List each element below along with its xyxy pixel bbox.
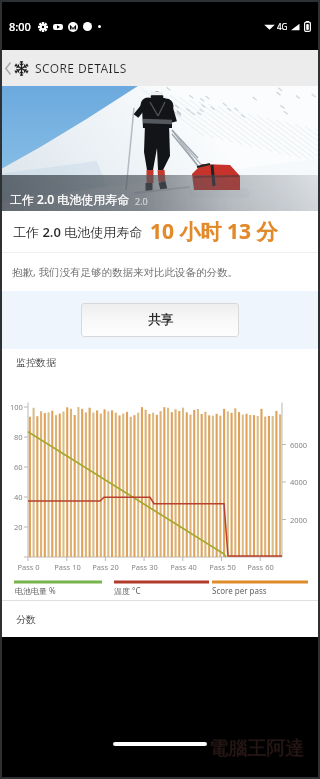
staticText: Pass 40 bbox=[170, 562, 197, 572]
staticText: 工作 2.0 电池使用寿命 bbox=[13, 223, 143, 241]
staticText: 工作 2.0 电池使用寿命 bbox=[10, 191, 130, 207]
staticText: 40 bbox=[14, 492, 23, 502]
staticText: 4G bbox=[277, 21, 288, 32]
staticText: Pass 10 bbox=[54, 562, 81, 572]
staticText: Pass 50 bbox=[209, 562, 236, 572]
staticText: 抱歉, 我们没有足够的数据来对比此设备的分数。 bbox=[12, 265, 239, 279]
staticText: 20 bbox=[14, 522, 23, 532]
staticText: 4000 bbox=[290, 477, 308, 487]
staticText: 6000 bbox=[290, 440, 308, 450]
staticText: SCORE DETAILS bbox=[35, 60, 127, 76]
staticText: 分数 bbox=[16, 613, 36, 626]
staticText: 共享 bbox=[148, 312, 173, 328]
staticText: 60 bbox=[14, 462, 23, 472]
staticText: 8:00 bbox=[9, 19, 31, 34]
staticText: 电池电量 % bbox=[15, 585, 56, 596]
staticText: 2.0 bbox=[135, 195, 148, 207]
button[interactable]: 共享 bbox=[81, 303, 239, 337]
staticText: Pass 60 bbox=[247, 562, 274, 572]
staticText: 监控数据 bbox=[16, 356, 56, 369]
staticText: Pass 20 bbox=[92, 562, 119, 572]
staticText: Score per pass bbox=[212, 585, 267, 596]
staticText: 2000 bbox=[290, 515, 308, 525]
staticText: 80 bbox=[14, 432, 23, 442]
staticText: Pass 0 bbox=[17, 562, 40, 572]
staticText: 電腦王阿達 bbox=[209, 737, 304, 761]
staticText: 100 bbox=[10, 402, 23, 412]
staticText: Pass 30 bbox=[131, 562, 158, 572]
button[interactable]: Back bbox=[2, 50, 14, 86]
staticText: 10 小时 13 分 bbox=[150, 217, 278, 246]
staticText: 温度 °C bbox=[114, 585, 141, 596]
button[interactable]: Home bbox=[113, 742, 207, 746]
